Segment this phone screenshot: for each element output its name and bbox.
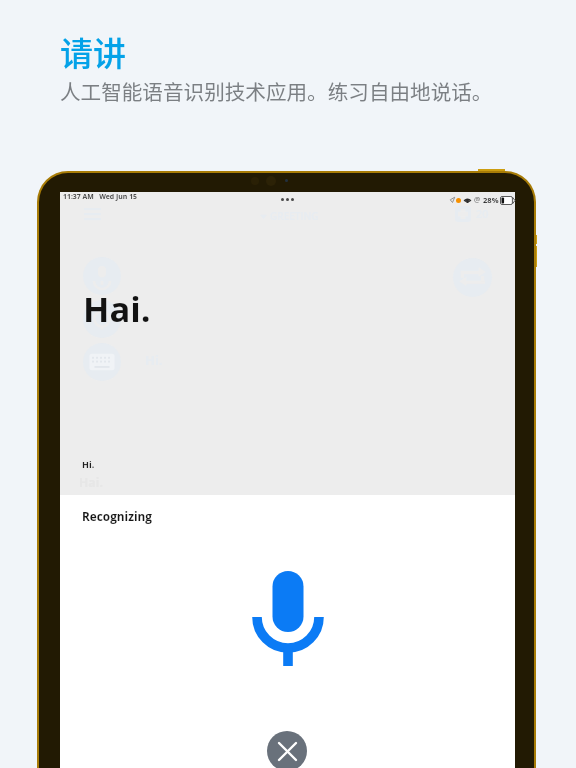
button[interactable]: Close — [267, 731, 307, 768]
staticText: 人工智能语音识别技术应用。练习自由地说话。 — [60, 76, 493, 106]
staticText: Recognizing — [82, 508, 152, 524]
staticText: @ — [474, 195, 481, 205]
button[interactable]: Microphone — [248, 564, 328, 672]
staticText: 请讲 — [60, 28, 126, 76]
staticText: Hi. — [82, 458, 95, 470]
staticText: Hai. — [83, 285, 151, 332]
staticText: 28% — [483, 195, 499, 205]
staticText: 11:37 AM Wed Jun 15 — [63, 192, 138, 201]
